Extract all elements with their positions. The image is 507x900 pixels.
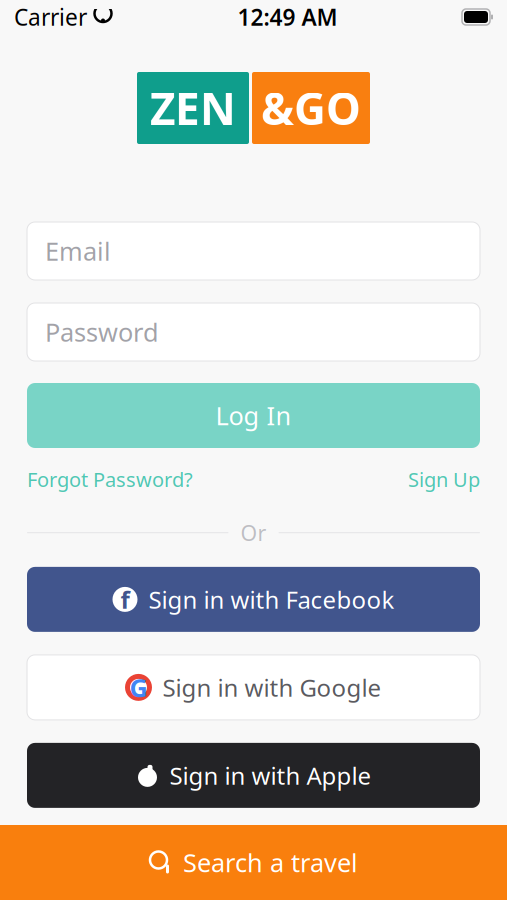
staticText: Email xyxy=(45,234,111,268)
button[interactable]: Forgot Password? xyxy=(27,460,193,499)
staticText: Search a travel xyxy=(183,846,358,879)
staticText: Password xyxy=(45,315,159,349)
staticText: f xyxy=(120,583,129,615)
staticText: G xyxy=(129,671,147,704)
button[interactable]: Sign Up xyxy=(408,460,480,499)
button[interactable]: Password xyxy=(27,303,480,361)
button[interactable]: Email xyxy=(27,222,480,280)
staticText: Sign in with Google xyxy=(162,671,381,703)
staticText: &GO xyxy=(261,79,361,137)
staticText: Log In xyxy=(215,399,291,432)
button[interactable]: f xyxy=(27,567,480,632)
button[interactable]: Log In xyxy=(27,383,480,448)
button[interactable]: Sign in with Apple xyxy=(27,743,480,808)
staticText: Sign Up xyxy=(408,466,480,493)
staticText: 12:49 AM xyxy=(237,2,337,32)
staticText: Forgot Password? xyxy=(27,466,193,493)
button[interactable]: G xyxy=(27,655,480,720)
staticText: ZEN xyxy=(150,79,236,137)
staticText: Sign in with Apple xyxy=(169,759,371,791)
staticText: Sign in with Facebook xyxy=(148,583,394,615)
staticText: Carrier xyxy=(14,2,87,32)
staticText: Or xyxy=(240,519,266,547)
button[interactable]: Search a travel xyxy=(0,825,507,900)
